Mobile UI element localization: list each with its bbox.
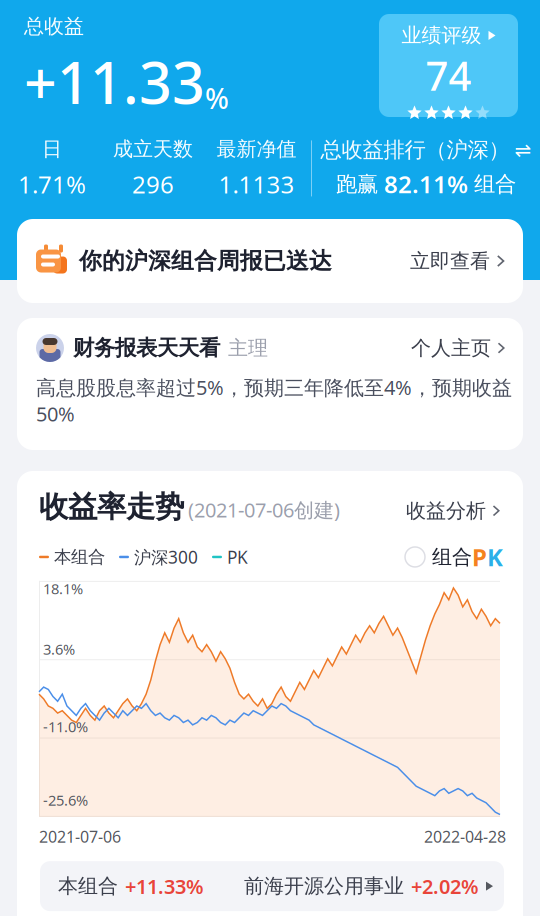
staticText: 前海开源公用事业 [244,874,404,898]
staticText: 财务报表天天看 [73,335,220,361]
staticText: 本组合 [54,546,105,568]
staticText: 最新净值 [216,137,296,161]
staticText: % [205,79,229,117]
staticText: 收益率走势 [39,489,184,525]
staticText: 成立天数 [113,137,193,161]
staticText: 本组合 [58,874,118,898]
staticText: 1.1133 [218,168,294,200]
staticText: 2022-04-28 [424,826,506,847]
staticText: 立即查看 [410,249,490,273]
staticText: 个人主页 [411,336,491,360]
staticText: 3.6% [43,639,75,659]
staticText: +11.33 [24,44,205,120]
staticText: PK [227,545,248,568]
staticText: 2021-07-06 [39,826,121,847]
staticText: 82.11% [378,168,474,200]
staticText: 你的沪深组合周报已送达 [79,247,332,275]
staticText: 296 [132,168,174,200]
staticText: 组合 [432,545,472,569]
staticText: 收益分析 [406,498,486,523]
button[interactable]: 业绩评级 [379,14,518,117]
staticText: 高息股股息率超过5%，预期三年降低至4%，预期收益50% [36,374,512,427]
staticText: 总收益 [24,14,84,39]
staticText: 主理 [228,336,268,360]
button[interactable]: 个人主页 [411,336,508,360]
staticText: 沪深300 [134,545,198,568]
staticText: 跑赢 [336,171,378,197]
staticText: ⇌ [514,139,531,161]
staticText: -11.0% [43,717,88,736]
staticText: 74 [425,49,471,102]
staticText: 18.1% [43,579,83,598]
staticText: 总收益排行（沪深） [320,137,509,163]
staticText: +11.33% [125,873,204,899]
staticText: P [472,541,487,573]
button[interactable]: 组合 [405,541,503,573]
staticText: +2.02% [411,873,479,899]
button[interactable]: 本组合 [40,861,504,911]
button[interactable]: 你的沪深组合周报已送达 [17,219,523,303]
staticText: (2021-07-06创建) [188,496,340,523]
button[interactable]: 收益分析 [406,498,503,525]
staticText: -25.6% [43,790,88,810]
staticText: 组合 [474,171,516,197]
staticText: 日 [42,137,62,161]
staticText: K [487,541,503,573]
staticText: 1.71% [18,168,86,200]
staticText: 业绩评级 [401,23,481,48]
